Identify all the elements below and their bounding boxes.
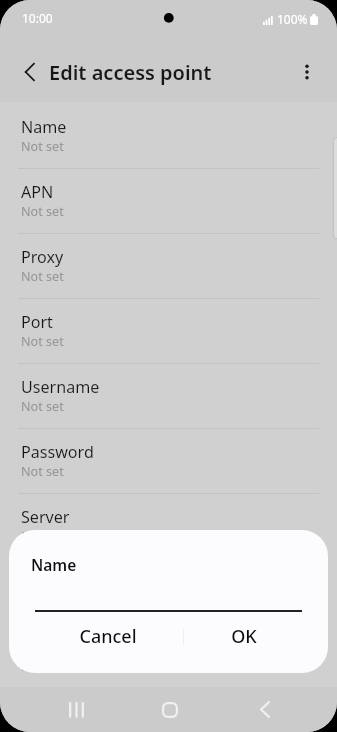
staticText: Password: [21, 441, 94, 463]
staticText: Port: [21, 311, 53, 333]
staticText: Name: [31, 554, 77, 575]
staticText: Edit access point: [49, 59, 212, 86]
staticText: Not set: [21, 398, 64, 415]
staticText: Server: [21, 506, 70, 528]
staticText: APN: [21, 181, 54, 203]
button[interactable]: Recent apps: [50, 687, 102, 732]
button[interactable]: Cancel: [9, 616, 173, 656]
staticText: Not set: [21, 658, 64, 675]
button[interactable]: MMSC: [0, 559, 337, 624]
button[interactable]: More options: [288, 53, 325, 90]
button[interactable]: APN: [0, 169, 337, 234]
button[interactable]: Server: [0, 494, 337, 559]
button[interactable]: Navigate up: [11, 53, 48, 90]
button[interactable]: MMS proxy: [0, 624, 337, 689]
staticText: Name: [21, 116, 67, 138]
button[interactable]: Proxy: [0, 234, 337, 299]
staticText: OK: [231, 624, 257, 649]
staticText: MMS proxy: [21, 636, 106, 658]
button[interactable]: Port: [0, 299, 337, 364]
button[interactable]: OK: [173, 616, 328, 656]
staticText: Not set: [21, 463, 64, 480]
button[interactable]: Back: [239, 687, 291, 732]
staticText: 100%: [277, 11, 308, 27]
staticText: Not set: [21, 138, 64, 155]
staticText: Not set: [21, 203, 64, 220]
button[interactable]: Home: [144, 687, 196, 732]
button[interactable]: Username: [0, 364, 337, 429]
staticText: Not set: [21, 528, 64, 545]
button[interactable]: Password: [0, 429, 337, 494]
staticText: 10:00: [22, 10, 53, 26]
staticText: Cancel: [79, 624, 137, 649]
staticText: Username: [21, 376, 100, 398]
staticText: Proxy: [21, 246, 64, 268]
button[interactable]: Name: [0, 104, 337, 169]
staticText: Not set: [21, 268, 64, 285]
staticText: Not set: [21, 333, 64, 350]
